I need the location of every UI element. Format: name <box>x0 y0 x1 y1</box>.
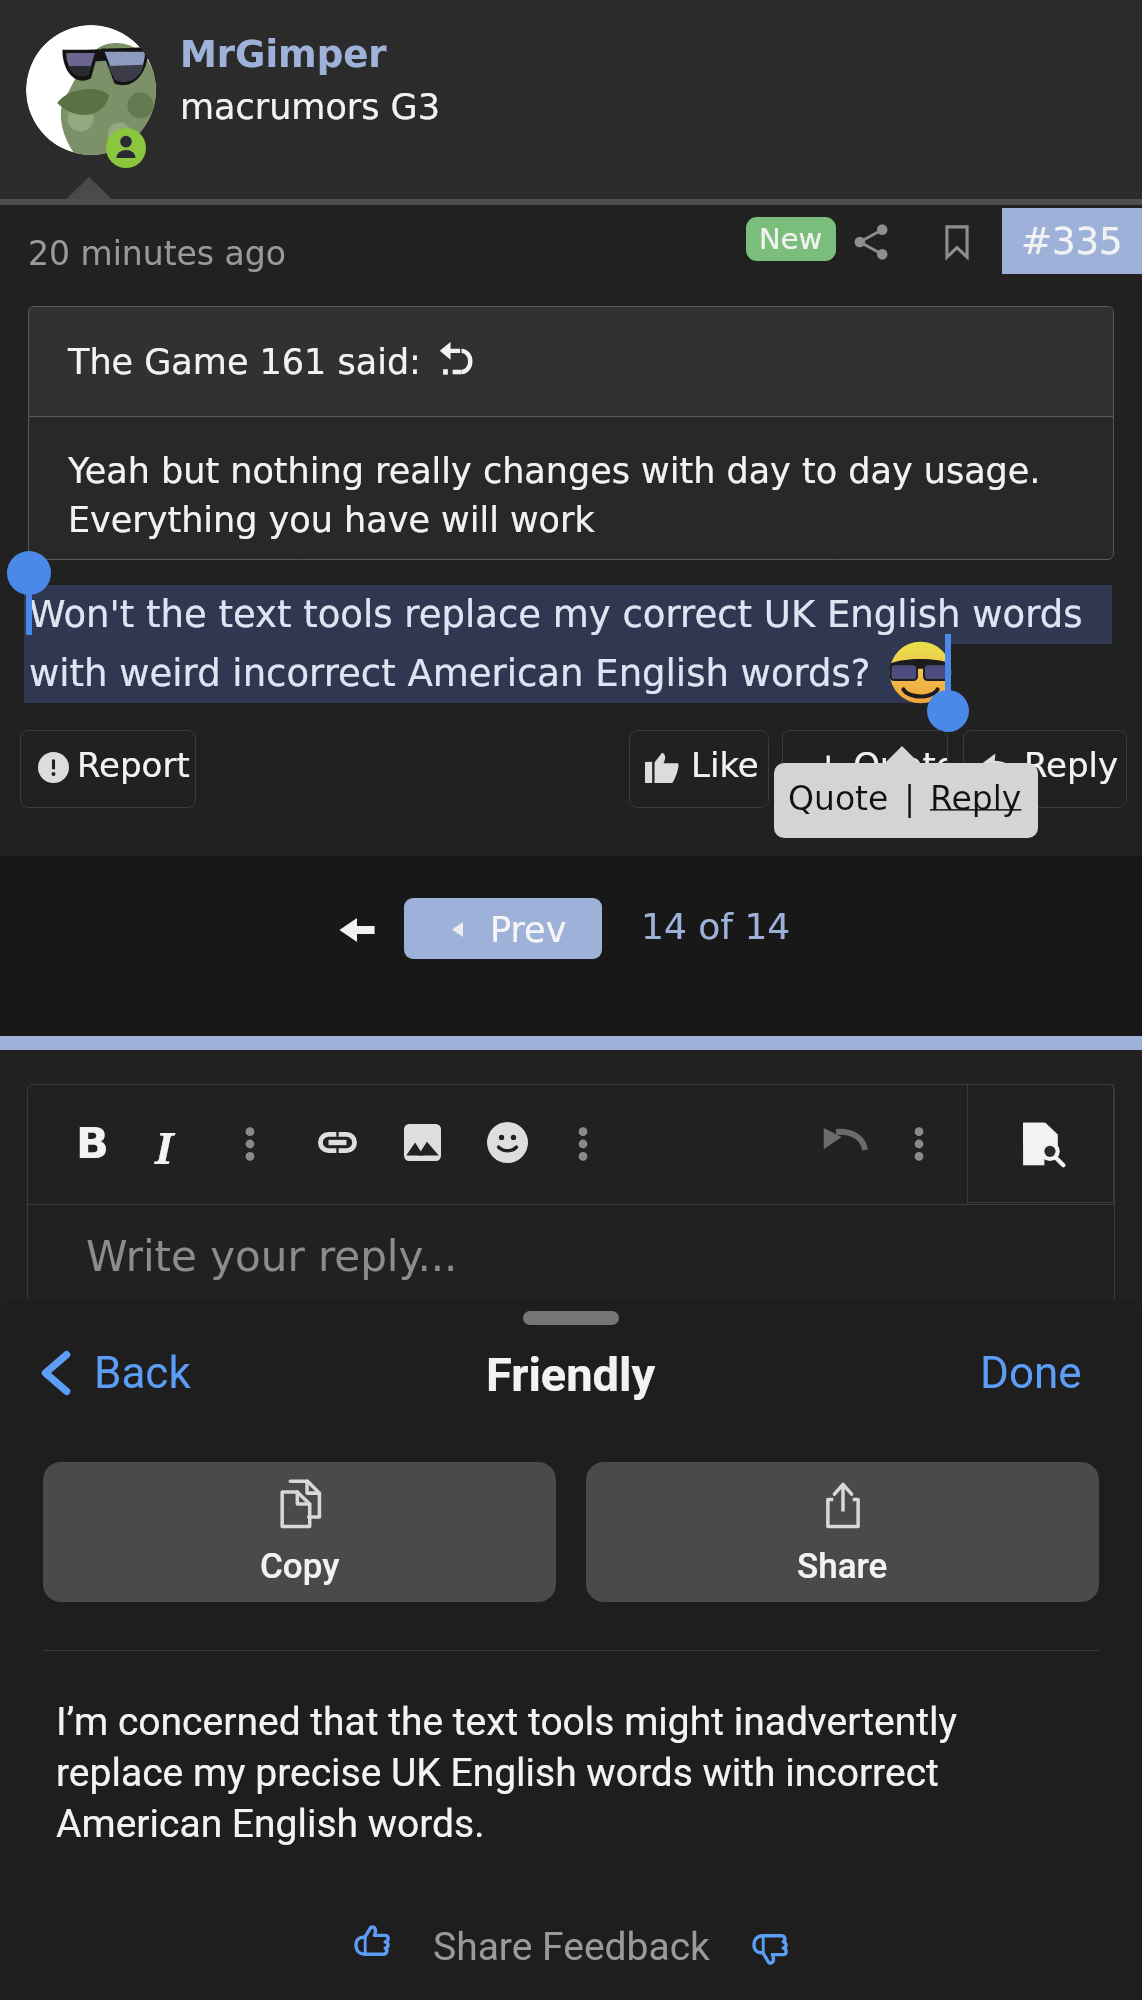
staticText: New <box>759 222 823 256</box>
button[interactable]: Reply <box>930 779 1022 817</box>
button[interactable]: Insert link <box>318 1132 357 1153</box>
button[interactable]: More options <box>228 1122 272 1166</box>
button[interactable]: Done <box>960 1337 1102 1409</box>
button[interactable]: More options <box>897 1122 941 1166</box>
button[interactable]: I <box>155 1118 173 1177</box>
staticText: 20 minutes ago <box>28 234 286 272</box>
button[interactable]: Back to top <box>337 910 377 950</box>
staticText: Write your reply... <box>86 1232 458 1281</box>
button[interactable]: + Quote <box>782 730 948 808</box>
button[interactable]: Like <box>629 730 769 808</box>
button[interactable]: Preview <box>967 1084 1114 1203</box>
staticText: #335 <box>1021 220 1123 263</box>
button[interactable]: Share <box>586 1462 1099 1602</box>
staticText: Report <box>77 745 190 785</box>
staticText: Share <box>797 1546 888 1587</box>
staticText: Won't the text tools replace my correct … <box>29 593 1083 695</box>
staticText: macrumors G3 <box>180 87 441 128</box>
button[interactable]: Back <box>24 1337 199 1409</box>
staticText: Copy <box>260 1546 340 1587</box>
button[interactable]: Insert image <box>404 1124 441 1161</box>
button[interactable]: New <box>746 217 836 261</box>
staticText: MrGimper <box>180 33 387 76</box>
staticText: The Game 161 said: <box>68 342 421 383</box>
button[interactable]: Reply <box>963 730 1127 808</box>
staticText: Reply <box>1024 745 1119 785</box>
staticText: Yeah but nothing really changes with day… <box>68 451 1041 540</box>
button[interactable]: More options <box>561 1122 605 1166</box>
button[interactable]: Quote <box>788 779 889 817</box>
button[interactable]: Prev <box>404 898 602 959</box>
button[interactable]: Undo <box>817 1114 873 1170</box>
button[interactable]: #335 <box>1002 208 1142 274</box>
button[interactable]: Thumbs up <box>352 1925 392 1965</box>
staticText: + Quote <box>814 745 948 785</box>
staticText: Back <box>94 1347 191 1399</box>
staticText: | <box>904 779 916 817</box>
button[interactable]: Bookmark <box>929 214 985 270</box>
button[interactable]: B <box>76 1118 109 1168</box>
staticText: Done <box>980 1347 1082 1399</box>
button[interactable]: Insert emoji <box>487 1122 528 1163</box>
button[interactable]: MrGimper avatar <box>26 25 156 155</box>
button[interactable]: Thumbs down <box>750 1925 790 1965</box>
staticText: 14 of 14 <box>641 906 791 948</box>
button[interactable]: Share <box>843 214 899 270</box>
button[interactable]: Copy <box>43 1462 556 1602</box>
staticText: Share Feedback <box>433 1924 710 1970</box>
staticText: Friendly <box>486 1347 656 1402</box>
staticText: I’m concerned that the text tools might … <box>56 1699 976 1847</box>
button[interactable]: Report <box>20 730 196 808</box>
staticText: Like <box>691 745 759 785</box>
staticText: Prev <box>490 910 567 951</box>
